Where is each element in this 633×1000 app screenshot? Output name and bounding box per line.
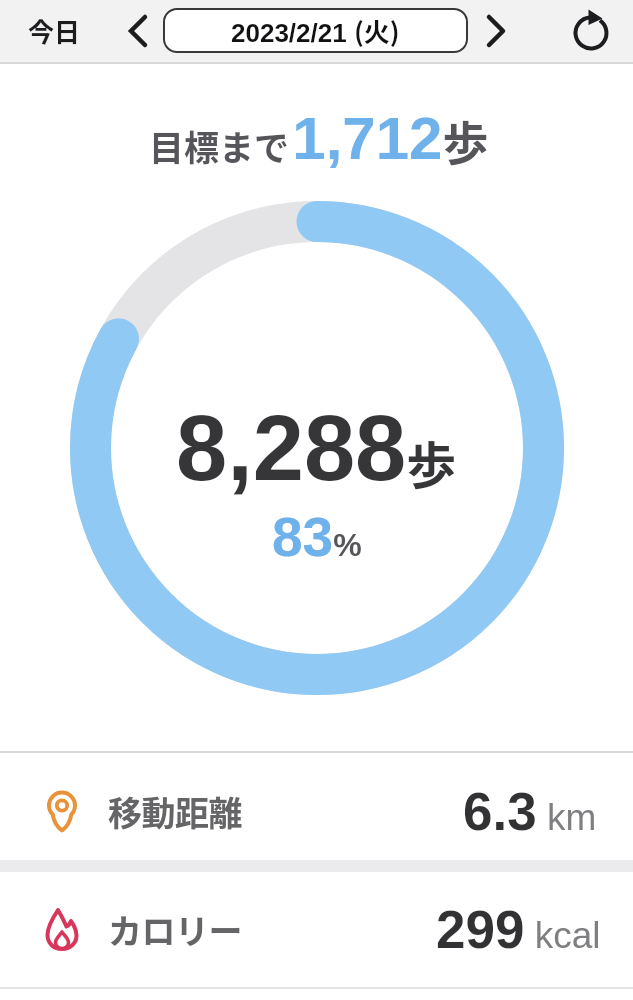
- staticText: 移動距離: [108, 787, 242, 836]
- staticText: カロリー: [108, 905, 242, 954]
- button[interactable]: 今日: [20, 8, 88, 54]
- staticText: 今日: [28, 12, 81, 50]
- button[interactable]: [568, 8, 616, 54]
- button[interactable]: [118, 8, 156, 54]
- button[interactable]: カロリー: [0, 872, 633, 987]
- staticText: 6.3 km: [463, 782, 597, 841]
- staticText: 8,288歩: [176, 397, 457, 500]
- staticText: 2023/2/21 (火): [231, 12, 400, 50]
- button[interactable]: [478, 8, 516, 54]
- staticText: 目標まで 1,712歩: [149, 105, 489, 174]
- staticText: 299 kcal: [436, 900, 601, 959]
- staticText: 83%: [272, 506, 362, 567]
- button[interactable]: 2023/2/21 (火): [163, 8, 468, 53]
- button[interactable]: 移動距離: [0, 753, 633, 860]
